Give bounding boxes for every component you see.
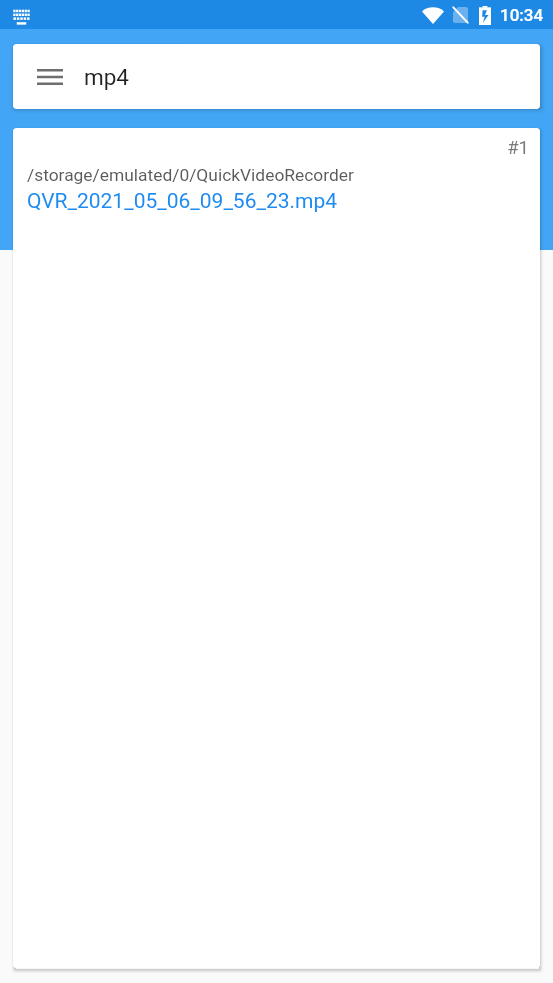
staticText: 10:34 <box>500 5 544 25</box>
other: Wi-Fi <box>422 6 444 24</box>
staticText: mp4 <box>84 64 130 90</box>
staticText: QVR_2021_05_06_09_56_23.mp4 <box>27 189 338 214</box>
button[interactable]: Menu <box>13 44 540 109</box>
other: No SIM <box>453 7 468 23</box>
button[interactable]: Menu <box>35 62 65 92</box>
other: Keyboard <box>13 9 30 21</box>
staticText: /storage/emulated/0/QuickVideoRecorder <box>27 165 354 185</box>
staticText: #1 <box>13 137 529 159</box>
other: Battery <box>479 6 491 25</box>
button[interactable]: #1 <box>13 128 540 224</box>
